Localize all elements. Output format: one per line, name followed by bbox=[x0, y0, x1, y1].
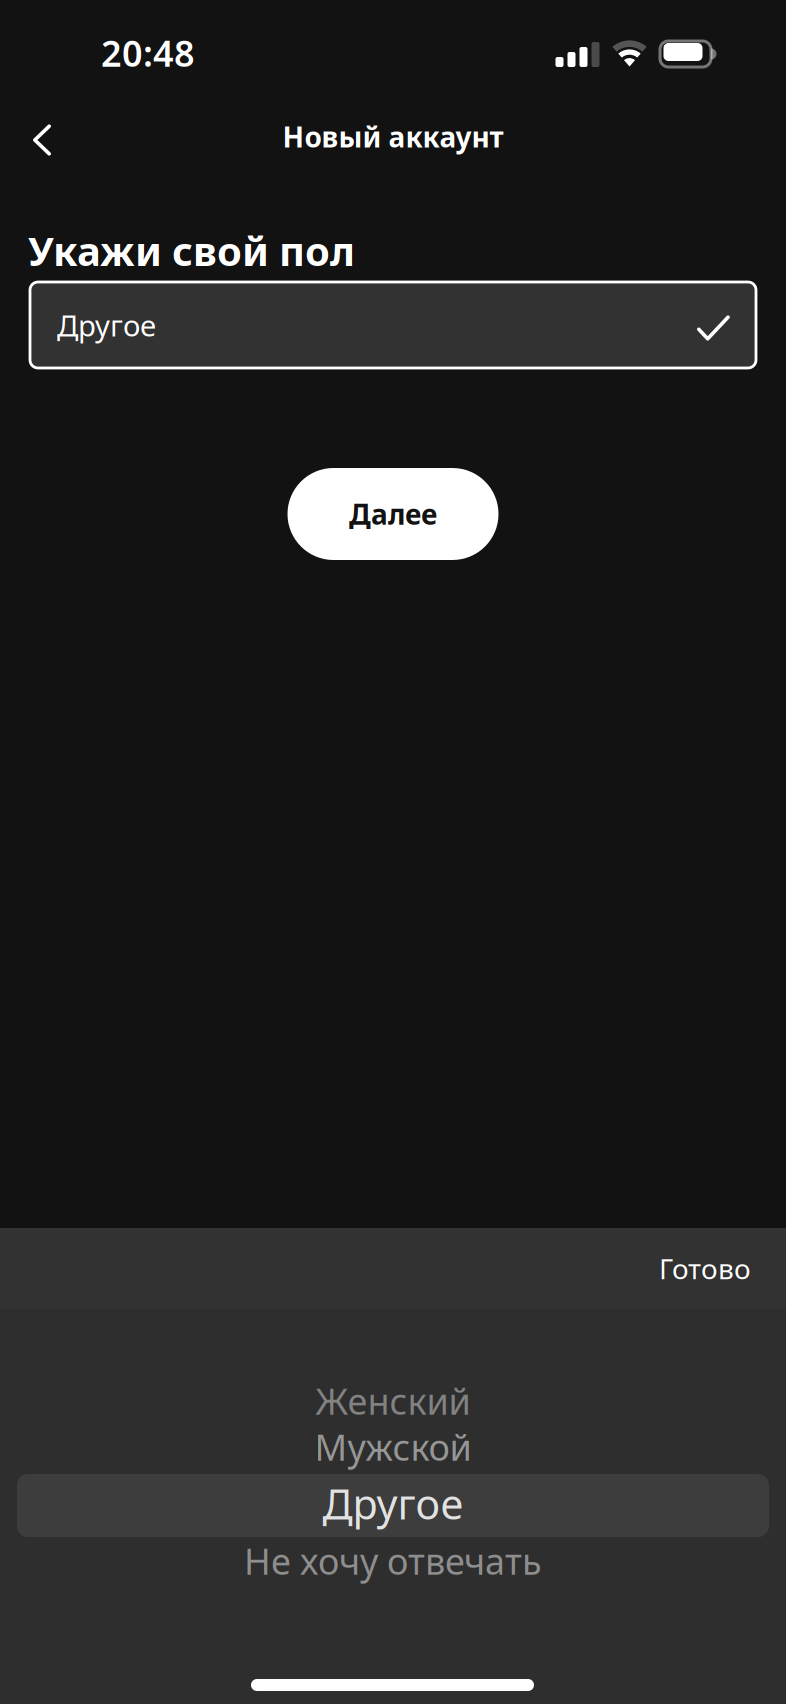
staticText: Далее bbox=[349, 495, 437, 533]
staticText: Другое bbox=[322, 1476, 463, 1531]
staticText: Готово bbox=[659, 1250, 751, 1287]
staticText: Другое bbox=[57, 305, 156, 344]
staticText: 20:48 bbox=[101, 29, 195, 77]
staticText: Мужской bbox=[314, 1423, 471, 1471]
button[interactable]: Назад bbox=[10, 108, 74, 172]
staticText: Укажи свой пол bbox=[28, 224, 355, 277]
button[interactable]: Другое bbox=[30, 282, 756, 368]
staticText: Не хочу отвечать bbox=[244, 1537, 542, 1585]
button[interactable]: Готово bbox=[640, 1234, 770, 1303]
staticText: Новый аккаунт bbox=[282, 118, 503, 155]
staticText: Женский bbox=[315, 1377, 470, 1425]
button[interactable]: Далее bbox=[287, 468, 498, 560]
